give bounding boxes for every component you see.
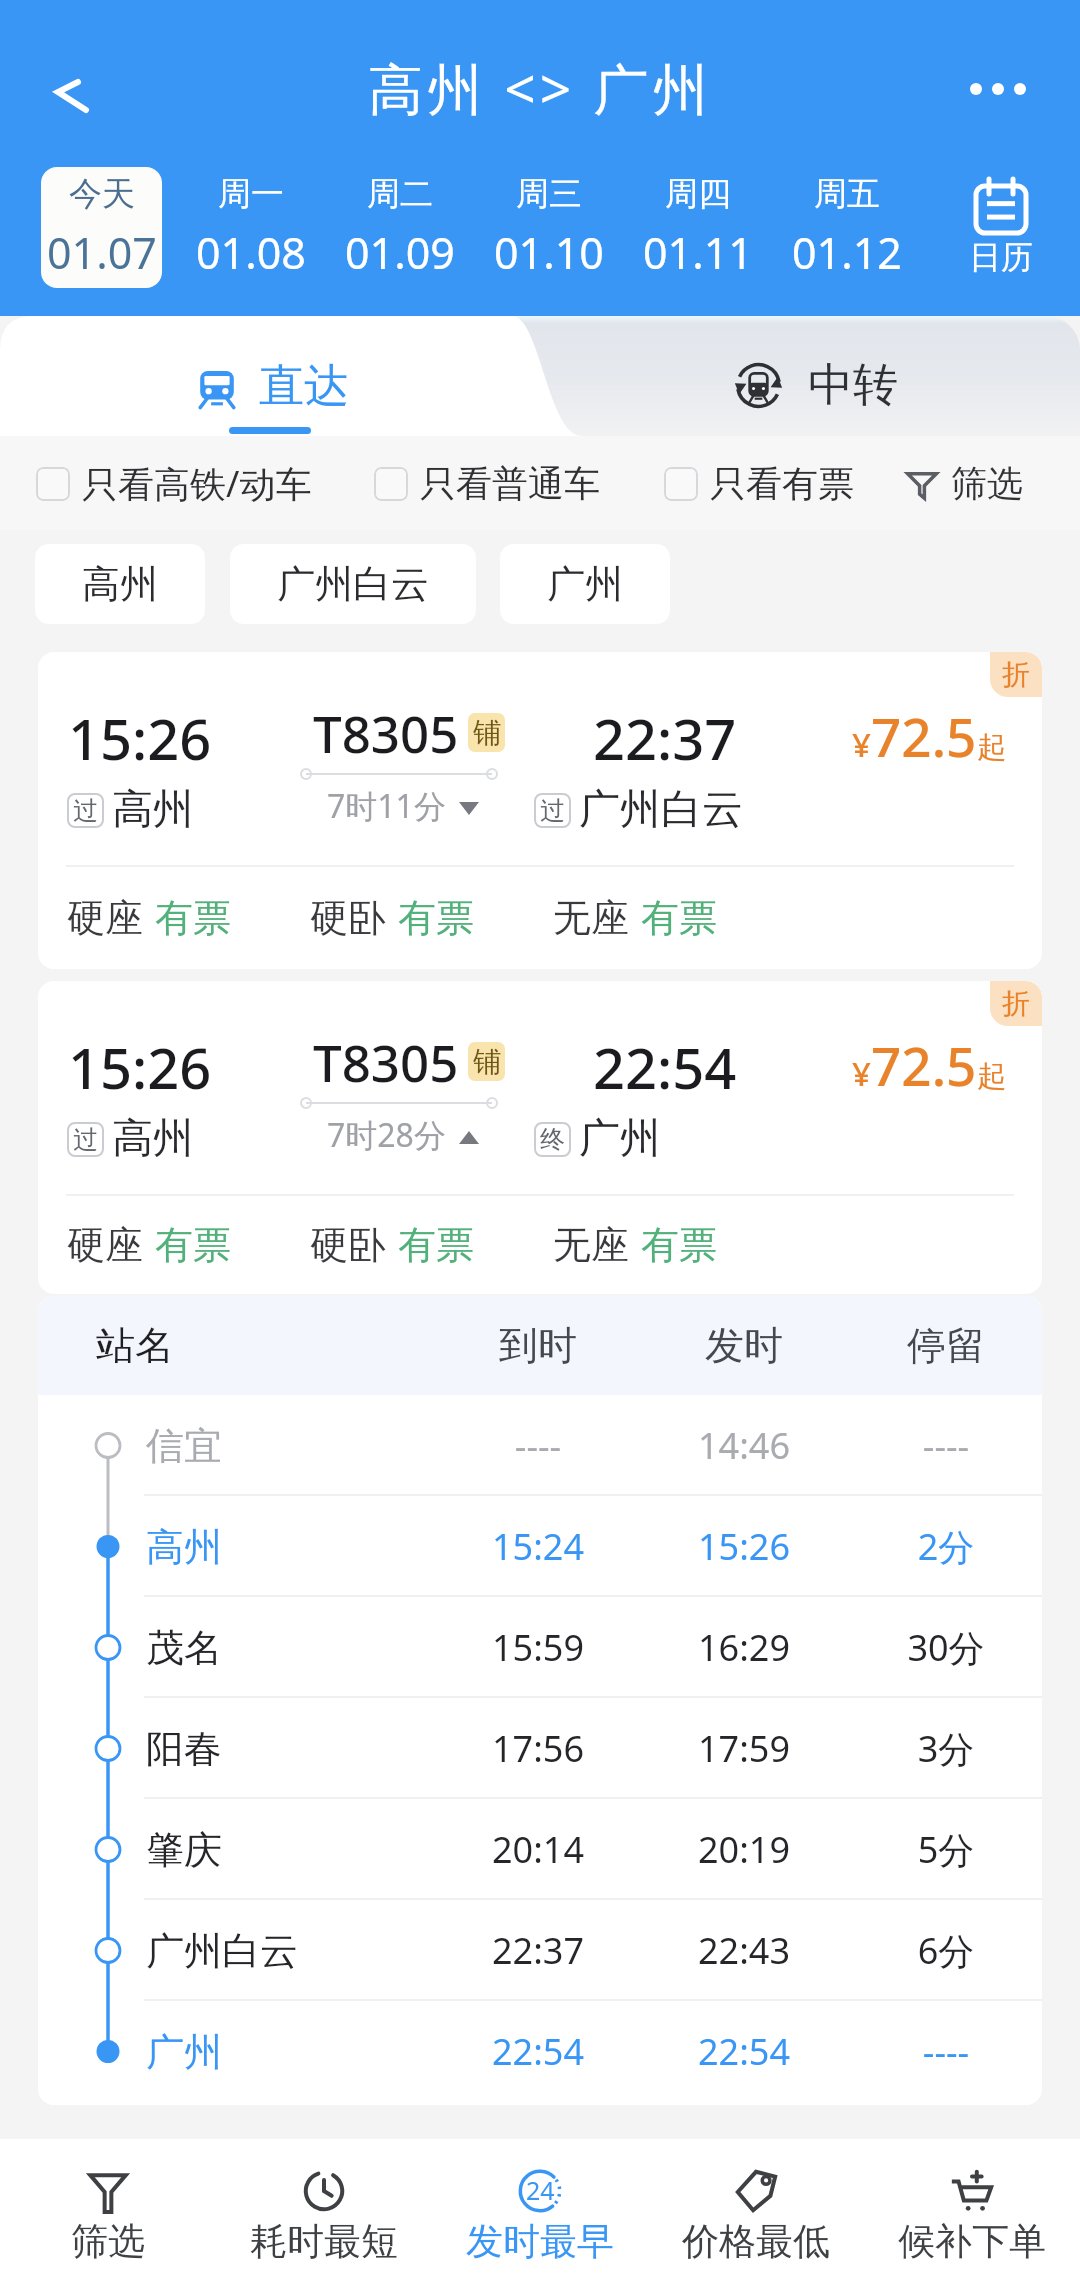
button[interactable]: 周五 — [786, 167, 907, 288]
button[interactable]: 广州白云 — [230, 544, 476, 624]
button[interactable]: 周二 — [339, 167, 460, 288]
staticText: 中转 — [808, 357, 898, 414]
button[interactable]: 高州 — [38, 1496, 1042, 1597]
staticText: 茂名 — [146, 1624, 222, 1672]
button[interactable]: 只看高铁/动车 — [36, 459, 312, 508]
staticText: 今天 — [69, 173, 135, 215]
staticText: 有票 — [398, 894, 474, 942]
button[interactable]: 信宜 — [38, 1395, 1042, 1496]
button[interactable]: Back — [16, 46, 116, 146]
staticText: 候补下单 — [898, 2218, 1046, 2265]
staticText: 7时11分 — [327, 784, 446, 828]
staticText: 广州白云 — [579, 784, 743, 836]
staticText: 高州 — [112, 1113, 194, 1165]
staticText: 只看普通车 — [420, 461, 600, 506]
staticText: 3分 — [856, 1724, 1036, 1773]
button[interactable]: 15:26 — [38, 981, 1042, 1294]
button[interactable]: 耗时最短 — [216, 2139, 432, 2285]
button[interactable]: 广州 — [38, 2001, 1042, 2102]
button[interactable]: 阳春 — [38, 1698, 1042, 1799]
button[interactable]: 广州 — [500, 544, 670, 624]
staticText: 肇庆 — [146, 1826, 222, 1874]
staticText: 硬座 — [67, 1221, 143, 1269]
button[interactable]: 广州白云 — [38, 1900, 1042, 2001]
button[interactable]: 直达 — [0, 316, 540, 436]
staticText: 有票 — [641, 894, 717, 942]
staticText: 01.09 — [345, 223, 455, 282]
button[interactable]: 只看有票 — [664, 461, 854, 506]
staticText: 有票 — [398, 1221, 474, 1269]
staticText: 20:14 — [448, 1825, 628, 1874]
button[interactable]: 高州 — [35, 544, 205, 624]
staticText: 22:54 — [448, 2027, 628, 2076]
button[interactable]: 筛选 — [905, 461, 1023, 506]
staticText: 17:59 — [654, 1724, 834, 1773]
staticText: 周二 — [367, 173, 433, 215]
staticText: 过 — [540, 795, 565, 826]
staticText: 折 — [1002, 657, 1030, 692]
staticText: 14:46 — [654, 1421, 834, 1470]
staticText: 15:24 — [448, 1522, 628, 1571]
button[interactable]: 筛选 — [0, 2139, 216, 2285]
staticText: 20:19 — [654, 1825, 834, 1874]
staticText: 22:54 — [654, 2027, 834, 2076]
staticText: 筛选 — [71, 2218, 145, 2265]
staticText: 22:37 — [593, 700, 737, 776]
staticText: 阳春 — [146, 1725, 222, 1773]
staticText: 22:37 — [448, 1926, 628, 1975]
staticText: 高州 <> 广州 — [368, 50, 712, 125]
staticText: 无座 — [553, 894, 629, 942]
button[interactable]: 肇庆 — [38, 1799, 1042, 1900]
staticText: 30分 — [856, 1623, 1036, 1672]
staticText: 直达 — [259, 358, 349, 415]
button[interactable]: 今天 — [41, 167, 162, 288]
button[interactable]: 茂名 — [38, 1597, 1042, 1698]
staticText: 22:54 — [593, 1029, 737, 1105]
staticText: 过 — [73, 795, 98, 826]
staticText: 只看高铁/动车 — [82, 459, 312, 508]
staticText: 72.5 — [871, 700, 977, 772]
staticText: 广州 — [547, 560, 623, 608]
button[interactable]: More options — [940, 54, 1056, 124]
staticText: 有票 — [155, 894, 231, 942]
staticText: T8305 — [313, 698, 459, 767]
button[interactable]: 24 — [432, 2139, 648, 2285]
button[interactable]: 周四 — [637, 167, 758, 288]
staticText: 15:26 — [654, 1522, 834, 1571]
button[interactable]: 候补下单 — [864, 2139, 1080, 2285]
button[interactable]: 日历 — [921, 165, 1080, 290]
staticText: 广州 — [146, 2028, 222, 2076]
staticText: 17:56 — [448, 1724, 628, 1773]
staticText: 只看有票 — [710, 461, 854, 506]
staticText: 价格最低 — [682, 2218, 830, 2265]
button[interactable]: 价格最低 — [648, 2139, 864, 2285]
staticText: 停留 — [856, 1321, 1036, 1370]
staticText: 过 — [73, 1124, 98, 1155]
staticText: 硬卧 — [310, 1221, 386, 1269]
staticText: 广州 — [579, 1113, 661, 1165]
staticText: 铺 — [473, 1044, 501, 1079]
staticText: 01.07 — [47, 223, 157, 282]
staticText: 筛选 — [951, 461, 1023, 506]
staticText: 72.5 — [871, 1029, 977, 1101]
button[interactable]: 周三 — [488, 167, 609, 288]
staticText: 硬卧 — [310, 894, 386, 942]
staticText: 铺 — [473, 715, 501, 750]
staticText: 6分 — [856, 1926, 1036, 1975]
button[interactable]: 中转 — [0, 316, 1080, 436]
staticText: 硬座 — [67, 894, 143, 942]
staticText: 15:26 — [68, 1029, 212, 1105]
staticText: 起 — [977, 1058, 1006, 1095]
staticText: ---- — [448, 1421, 628, 1470]
staticText: 终 — [540, 1124, 565, 1155]
button[interactable]: 15:26 — [38, 652, 1042, 969]
staticText: 折 — [1002, 986, 1030, 1021]
button[interactable]: 周一 — [190, 167, 311, 288]
staticText: 到时 — [448, 1321, 628, 1370]
staticText: 周三 — [516, 173, 582, 215]
staticText: 01.11 — [643, 223, 753, 282]
staticText: 高州 — [112, 784, 194, 836]
staticText: ---- — [856, 2027, 1036, 2076]
button[interactable]: 只看普通车 — [374, 461, 600, 506]
staticText: 广州白云 — [277, 560, 429, 608]
